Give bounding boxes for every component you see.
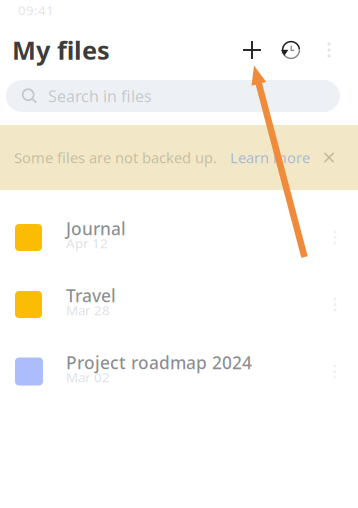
button[interactable]: Dismiss bbox=[317, 145, 341, 169]
button[interactable]: Journal bbox=[0, 204, 358, 271]
button[interactable]: Recent activity bbox=[276, 35, 306, 65]
staticText: Journal bbox=[66, 217, 126, 240]
button[interactable]: Search in files bbox=[6, 80, 340, 112]
staticText: Learn more bbox=[230, 148, 310, 167]
staticText: Mar 28 bbox=[66, 301, 110, 319]
staticText: Travel bbox=[66, 284, 116, 307]
button[interactable]: Travel bbox=[0, 271, 358, 338]
button[interactable]: Project roadmap 2024 bbox=[0, 338, 358, 405]
button[interactable]: More options bbox=[316, 37, 342, 63]
button[interactable]: Learn more bbox=[217, 148, 310, 167]
staticText: Search in files bbox=[48, 85, 152, 107]
staticText: Some files are not backed up. bbox=[14, 148, 217, 167]
staticText: Apr 12 bbox=[66, 234, 108, 252]
staticText: Mar 02 bbox=[66, 368, 110, 386]
staticText: Project roadmap 2024 bbox=[66, 351, 252, 374]
button[interactable]: Create new bbox=[237, 35, 267, 65]
staticText: 09:41 bbox=[18, 1, 54, 19]
staticText: My files bbox=[12, 33, 110, 67]
